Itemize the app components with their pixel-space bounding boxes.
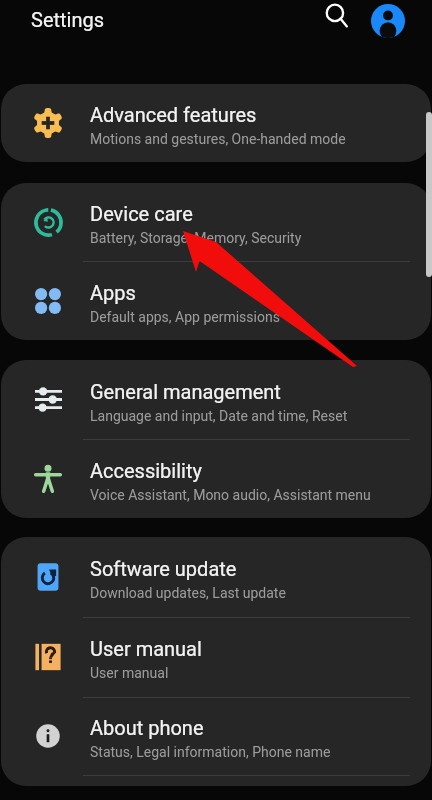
staticText: Motions and gestures, One-handed mode bbox=[90, 131, 346, 147]
staticText: User manual bbox=[90, 637, 202, 660]
staticText: Download updates, Last update bbox=[90, 585, 286, 601]
button[interactable]: About phone bbox=[1, 697, 431, 775]
button[interactable]: General management bbox=[1, 360, 431, 439]
staticText: General management bbox=[90, 380, 281, 403]
staticText: Battery, Storage, Memory, Security bbox=[90, 230, 302, 246]
button[interactable]: Accessibility bbox=[1, 439, 431, 518]
staticText: Voice Assistant, Mono audio, Assistant m… bbox=[90, 487, 371, 503]
staticText: User manual bbox=[90, 665, 169, 681]
staticText: Software update bbox=[90, 557, 237, 580]
staticText: Settings bbox=[31, 8, 105, 31]
staticText: Accessibility bbox=[90, 459, 202, 482]
staticText: Apps bbox=[90, 281, 136, 304]
button[interactable]: Advanced features bbox=[1, 84, 431, 162]
staticText: About phone bbox=[90, 716, 204, 739]
staticText: Device care bbox=[90, 202, 193, 225]
staticText: Language and input, Date and time, Reset bbox=[90, 408, 348, 424]
button[interactable]: Software update bbox=[1, 537, 431, 617]
staticText: Status, Legal information, Phone name bbox=[90, 744, 331, 760]
button[interactable]: Search bbox=[313, 0, 361, 40]
button[interactable]: Device care bbox=[1, 183, 431, 261]
staticText: Default apps, App permissions bbox=[90, 309, 280, 325]
button[interactable]: Account bbox=[364, 0, 412, 45]
button[interactable]: User manual bbox=[1, 617, 431, 697]
staticText: Advanced features bbox=[90, 103, 257, 126]
button[interactable]: Apps bbox=[1, 261, 431, 340]
